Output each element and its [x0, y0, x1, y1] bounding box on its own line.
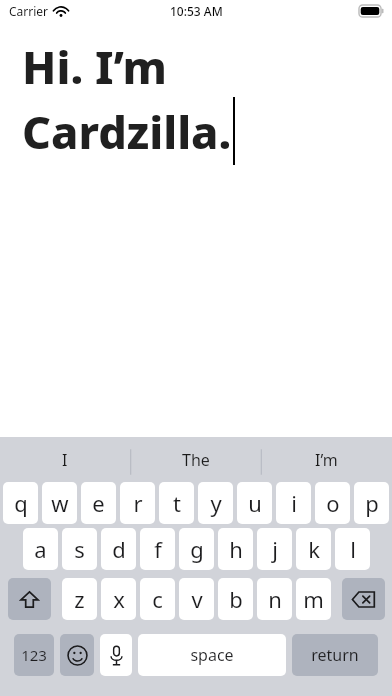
staticText: I	[62, 449, 68, 471]
button[interactable]: m	[296, 578, 331, 620]
button[interactable]: j	[257, 528, 292, 570]
button[interactable]: y	[198, 482, 233, 524]
staticText: a	[34, 534, 47, 564]
button[interactable]: Delete	[342, 578, 385, 620]
button[interactable]: Emoji	[60, 634, 94, 676]
staticText: x	[113, 584, 125, 614]
button[interactable]: f	[140, 528, 175, 570]
button[interactable]: space	[138, 634, 286, 676]
button[interactable]: return	[292, 634, 378, 676]
button[interactable]: p	[354, 482, 389, 524]
staticText: o	[326, 488, 340, 518]
staticText: f	[154, 534, 162, 564]
staticText: space	[190, 644, 234, 666]
staticText: Carrier	[9, 3, 49, 19]
button[interactable]: a	[23, 528, 58, 570]
button[interactable]: e	[81, 482, 116, 524]
staticText: h	[229, 534, 243, 564]
button[interactable]: d	[101, 528, 136, 570]
button[interactable]: t	[159, 482, 194, 524]
staticText: Cardzilla.	[22, 101, 232, 162]
staticText: y	[210, 488, 222, 518]
staticText: 10:53 AM	[170, 3, 223, 19]
button[interactable]: Dictate	[100, 634, 132, 676]
staticText: Hi. I’m	[22, 36, 167, 97]
button[interactable]: k	[296, 528, 331, 570]
staticText: g	[190, 534, 204, 564]
staticText: 123	[21, 645, 47, 665]
staticText: return	[311, 644, 359, 666]
button[interactable]: c	[140, 578, 175, 620]
staticText: i	[291, 488, 297, 518]
button[interactable]: q	[3, 482, 38, 524]
button[interactable]: h	[218, 528, 253, 570]
staticText: k	[308, 534, 320, 564]
staticText: e	[92, 488, 105, 518]
button[interactable]: n	[257, 578, 292, 620]
staticText: j	[272, 534, 278, 564]
staticText: n	[268, 584, 282, 614]
button[interactable]: u	[237, 482, 272, 524]
staticText: c	[152, 584, 163, 614]
button[interactable]: b	[218, 578, 253, 620]
button[interactable]: l	[335, 528, 370, 570]
button[interactable]: v	[179, 578, 214, 620]
staticText: m	[303, 584, 324, 614]
button[interactable]: r	[120, 482, 155, 524]
button[interactable]: 123	[14, 634, 54, 676]
staticText: p	[365, 488, 379, 518]
staticText: I’m	[315, 449, 338, 471]
staticText: The	[182, 449, 210, 471]
staticText: r	[133, 488, 143, 518]
button[interactable]: The	[130, 437, 261, 482]
button[interactable]: I’m	[261, 437, 392, 482]
staticText: b	[229, 584, 243, 614]
staticText: u	[248, 488, 262, 518]
button[interactable]: x	[101, 578, 136, 620]
staticText: t	[173, 488, 181, 518]
staticText: v	[191, 584, 203, 614]
button[interactable]: w	[42, 482, 77, 524]
staticText: s	[74, 534, 85, 564]
button[interactable]: g	[179, 528, 214, 570]
button[interactable]: z	[62, 578, 97, 620]
staticText: w	[51, 488, 69, 518]
button[interactable]: i	[276, 482, 311, 524]
button[interactable]: Shift	[8, 578, 51, 620]
staticText: q	[14, 488, 28, 518]
button[interactable]: s	[62, 528, 97, 570]
staticText: z	[74, 584, 85, 614]
staticText: d	[112, 534, 126, 564]
staticText: l	[350, 534, 356, 564]
button[interactable]: I	[0, 437, 130, 482]
button[interactable]: o	[315, 482, 350, 524]
